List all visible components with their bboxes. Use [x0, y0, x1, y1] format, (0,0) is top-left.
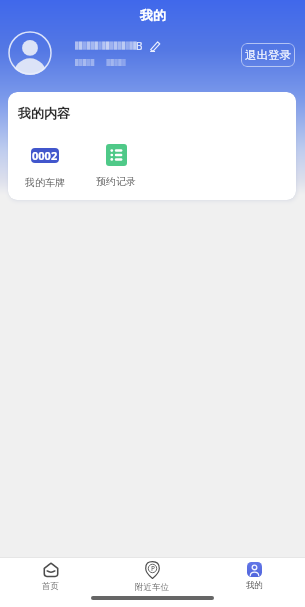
- staticText: 预约记录: [96, 175, 136, 188]
- staticText: 我的车牌: [25, 176, 65, 189]
- button[interactable]: 0002: [21, 148, 69, 189]
- staticText: 退出登录: [245, 48, 291, 62]
- staticText: P: [151, 564, 155, 573]
- staticText: 附近车位: [135, 582, 169, 593]
- staticText: 0002: [32, 148, 58, 163]
- staticText: 我的内容: [18, 105, 70, 121]
- button[interactable]: P: [101, 558, 203, 607]
- button[interactable]: 我的: [203, 558, 305, 607]
- staticText: 我的: [140, 7, 166, 23]
- staticText: 首页: [42, 581, 59, 592]
- staticText: B: [136, 39, 143, 53]
- staticText: 我的: [246, 580, 263, 591]
- button[interactable]: 退出登录: [241, 43, 295, 67]
- button[interactable]: 编辑昵称: [149, 40, 161, 52]
- button[interactable]: 首页: [0, 558, 101, 607]
- button[interactable]: 预约记录: [92, 144, 140, 188]
